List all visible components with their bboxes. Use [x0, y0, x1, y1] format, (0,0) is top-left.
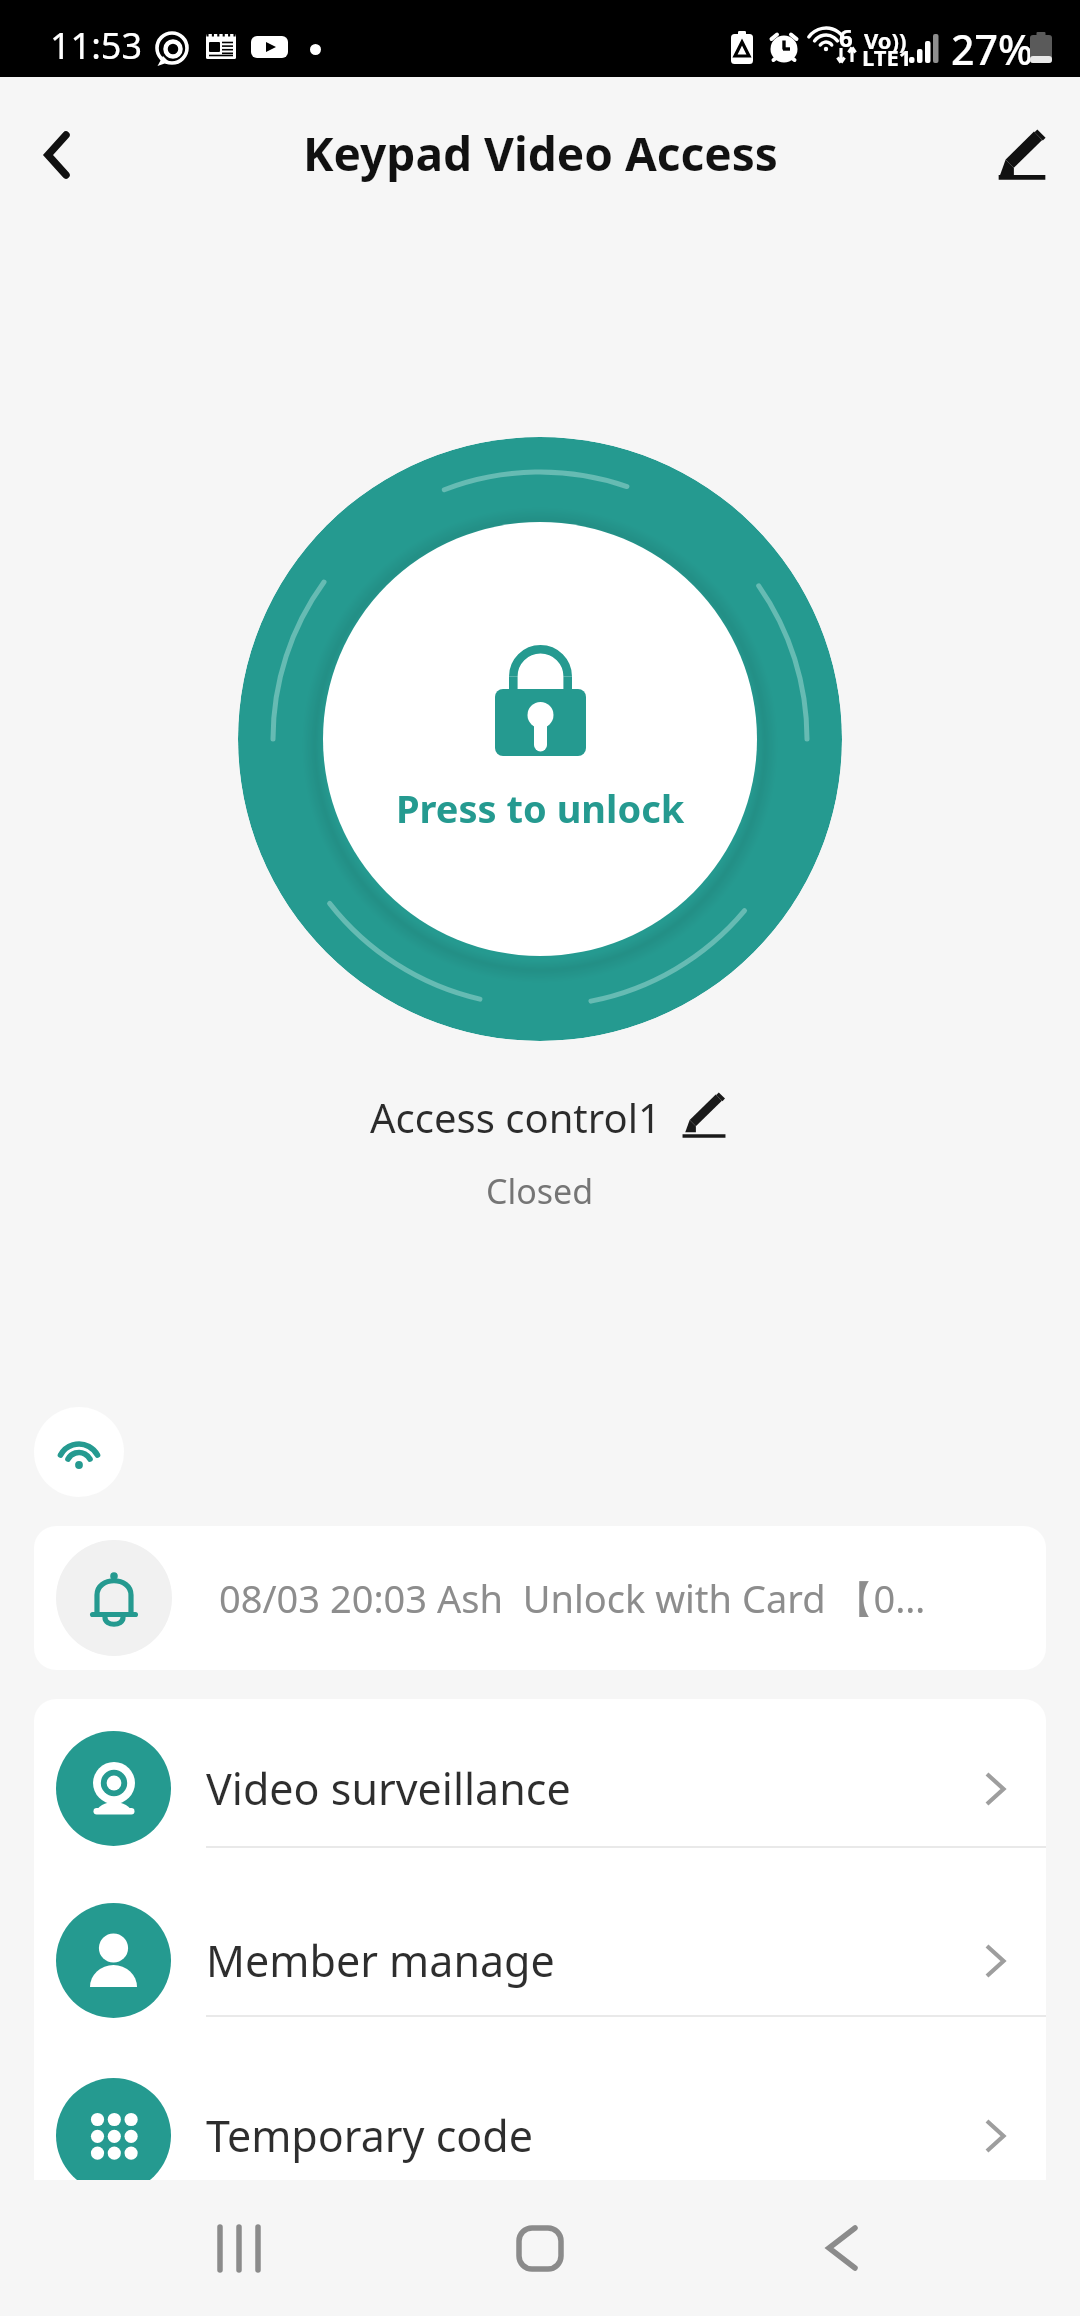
- staticText: 08/03 20:03 Ash Unlock with Card 【0…: [219, 1572, 926, 1624]
- button[interactable]: Rename device: [679, 1092, 729, 1142]
- button[interactable]: Home: [478, 2180, 602, 2316]
- staticText: 6: [839, 21, 853, 54]
- staticText: 27%: [951, 21, 1033, 77]
- button[interactable]: WiFi connected: [34, 1407, 124, 1497]
- button[interactable]: Back: [9, 107, 105, 203]
- staticText: LTE1: [862, 42, 912, 72]
- staticText: Vo)): [864, 25, 907, 55]
- staticText: Keypad Video Access: [303, 122, 778, 185]
- staticText: Access control1: [370, 1090, 661, 1144]
- staticText: Temporary code: [206, 2106, 534, 2165]
- button[interactable]: Press to unlock: [238, 437, 842, 1041]
- staticText: Closed: [486, 1168, 594, 1214]
- button[interactable]: Back: [780, 2180, 904, 2316]
- staticText: Press to unlock: [396, 782, 685, 834]
- button[interactable]: Edit name: [974, 109, 1070, 205]
- button[interactable]: Recent apps: [177, 2180, 301, 2316]
- staticText: 11:53: [50, 21, 143, 70]
- button[interactable]: Temporary code: [34, 2049, 1046, 2182]
- staticText: Member manage: [206, 1931, 555, 1990]
- button[interactable]: 08/03 20:03 Ash Unlock with Card 【0…: [34, 1526, 1046, 1670]
- button[interactable]: Video surveillance: [34, 1702, 1046, 1875]
- staticText: Video surveillance: [206, 1759, 571, 1818]
- button[interactable]: Member manage: [34, 1874, 1046, 2047]
